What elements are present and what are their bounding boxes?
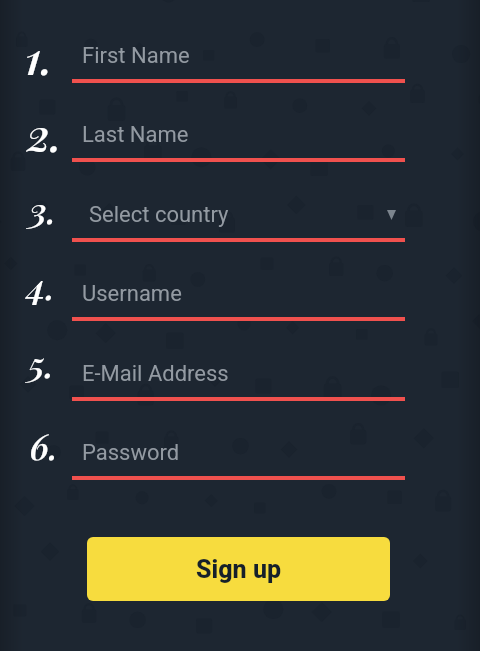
button[interactable]: Select country	[89, 202, 392, 236]
staticText: Username	[82, 281, 182, 307]
staticText: 1.	[25, 26, 53, 86]
staticText: 3.	[29, 185, 57, 233]
staticText: E-Mail Address	[82, 361, 229, 387]
button[interactable]: Password	[82, 440, 392, 474]
staticText: 6.	[30, 422, 59, 469]
staticText: 4.	[27, 261, 56, 309]
staticText: Sign up	[196, 555, 282, 584]
button[interactable]: Username	[82, 281, 392, 315]
button[interactable]: E-Mail Address	[82, 361, 392, 395]
staticText: Password	[82, 440, 180, 466]
staticText: First Name	[82, 43, 190, 69]
button[interactable]: First Name	[82, 43, 392, 77]
button[interactable]: Sign up	[87, 537, 390, 601]
staticText: 5.	[28, 339, 55, 387]
button[interactable]: Last Name	[82, 122, 392, 156]
staticText: Last Name	[82, 122, 189, 148]
staticText: Select country	[89, 202, 229, 228]
staticText: 2.	[27, 103, 62, 163]
other: Select country	[387, 210, 396, 220]
